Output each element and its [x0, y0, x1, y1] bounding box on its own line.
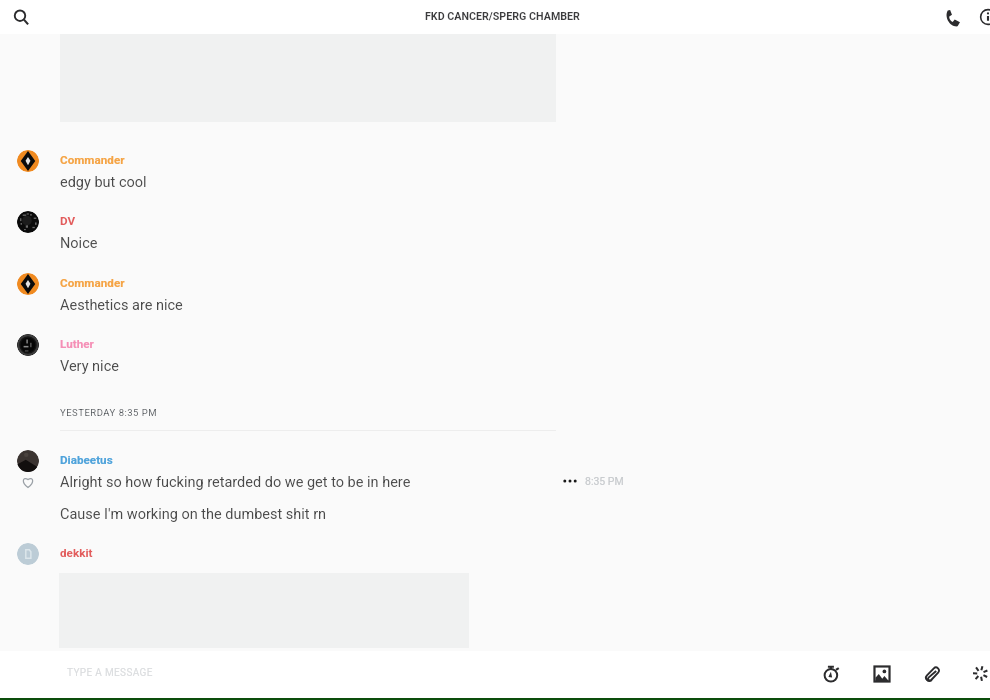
staticText: FKD CANCER/SPERG CHAMBER	[425, 10, 580, 23]
button[interactable]: Luther	[0, 330, 990, 388]
button[interactable]: Call	[938, 4, 966, 32]
staticText: Very nice	[60, 358, 119, 375]
button[interactable]: Effects	[961, 654, 990, 693]
button[interactable]: Info	[974, 3, 990, 31]
button[interactable]: Search	[7, 3, 35, 31]
staticText: Cause I'm working on the dumbest shit rn	[60, 506, 327, 523]
button[interactable]: Like	[18, 472, 38, 492]
staticText: edgy but cool	[60, 174, 147, 191]
staticText: Alright so how fucking retarded do we ge…	[60, 474, 411, 491]
staticText: Luther	[60, 337, 94, 351]
staticText: Aesthetics are nice	[60, 297, 183, 314]
staticText: DV	[60, 214, 76, 228]
button[interactable]: Photo	[862, 654, 901, 693]
staticText: dekkit	[60, 546, 93, 560]
button[interactable]: More options	[560, 471, 580, 491]
button[interactable]: Commander	[0, 146, 990, 204]
staticText: YESTERDAY 8:35 PM	[60, 407, 158, 418]
staticText: Diabeetus	[60, 453, 113, 467]
button[interactable]: DV	[0, 207, 990, 265]
button[interactable]: Timer	[812, 654, 851, 693]
button[interactable]: Commander	[0, 269, 990, 327]
staticText: Commander	[60, 276, 125, 290]
button[interactable]: TYPE A MESSAGE	[0, 651, 800, 700]
staticText: 8:35 PM	[585, 475, 624, 487]
button[interactable]: Attach file	[912, 654, 951, 693]
staticText: Commander	[60, 153, 125, 167]
staticText: Noice	[60, 235, 98, 252]
staticText: TYPE A MESSAGE	[67, 667, 153, 679]
